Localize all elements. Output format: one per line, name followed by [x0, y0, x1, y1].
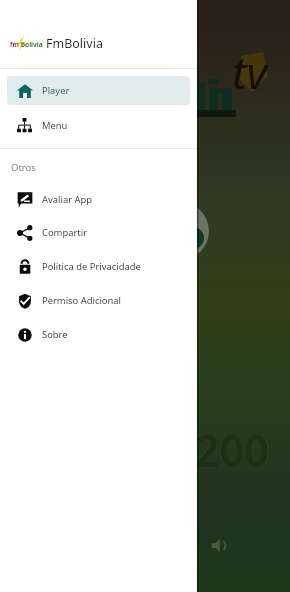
staticText: FmBolivia [46, 35, 103, 52]
staticText: Sobre [42, 328, 68, 341]
staticText: bolivia [21, 40, 43, 49]
button[interactable]: Politica de Privacidade [7, 252, 190, 281]
staticText: Avaliar App [42, 193, 93, 206]
button[interactable]: Sobre [7, 320, 190, 349]
button[interactable]: Compartir [7, 218, 190, 247]
staticText: Permiso Adicional [42, 294, 121, 307]
staticText: Compartir [42, 226, 88, 239]
button[interactable]: Player [7, 76, 190, 105]
staticText: fm [10, 40, 19, 49]
staticText: Otros [11, 161, 36, 174]
staticText: tv [232, 42, 268, 102]
button[interactable]: Permiso Adicional [7, 286, 190, 315]
staticText: Menu [42, 119, 68, 132]
button[interactable]: Menu [7, 111, 190, 140]
staticText: Player [42, 84, 70, 97]
staticText: Politica de Privacidade [42, 260, 141, 273]
staticText: 200 [193, 419, 271, 480]
button[interactable]: Avaliar App [7, 185, 190, 214]
staticText: 200 [194, 420, 270, 480]
